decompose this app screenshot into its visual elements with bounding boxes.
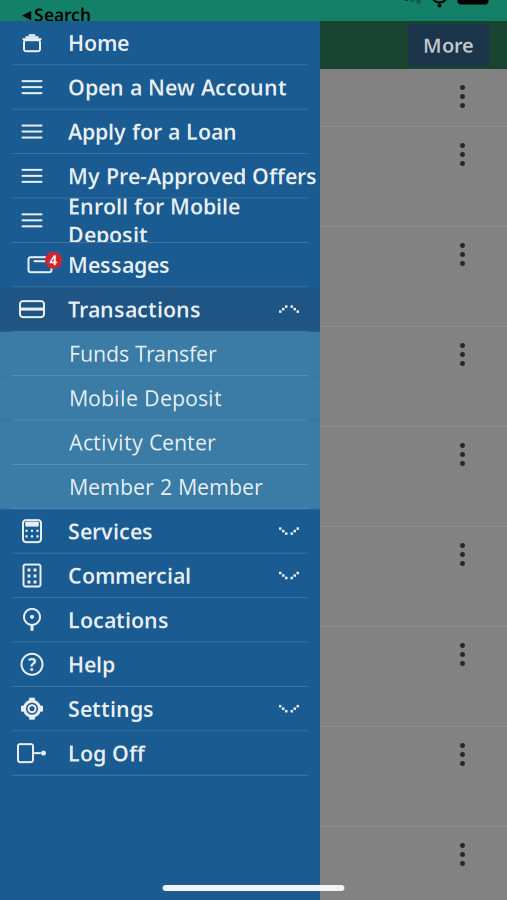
- staticText: Member 2 Member: [69, 472, 263, 501]
- staticText: Apply for a Loan: [68, 117, 237, 146]
- staticText: ◀: [22, 8, 31, 21]
- staticText: ?: [28, 653, 36, 676]
- staticText: My Pre-Approved Offers: [68, 162, 317, 190]
- staticText: More: [423, 32, 474, 58]
- button[interactable]: Transactions: [0, 287, 320, 332]
- button[interactable]: Services: [0, 509, 320, 554]
- button[interactable]: Funds Transfer: [0, 332, 320, 376]
- staticText: Commercial: [68, 561, 191, 590]
- button[interactable]: Mobile Deposit: [0, 376, 320, 421]
- button[interactable]: 4: [0, 243, 320, 287]
- staticText: Services: [68, 517, 153, 545]
- staticText: Funds Transfer: [69, 339, 217, 368]
- button[interactable]: ?: [0, 643, 320, 687]
- staticText: Home: [68, 28, 129, 57]
- button[interactable]: Open a New Account: [0, 65, 320, 110]
- staticText: Open a New Account: [68, 73, 287, 101]
- staticText: Enroll for Mobile Deposit: [68, 192, 240, 249]
- button[interactable]: Home: [0, 21, 320, 65]
- staticText: Settings: [68, 694, 154, 723]
- button[interactable]: Settings: [0, 687, 320, 731]
- staticText: Log Off: [68, 739, 145, 767]
- staticText: Mobile Deposit: [69, 384, 222, 412]
- button[interactable]: My Pre-Approved Offers: [0, 154, 320, 199]
- button[interactable]: Apply for a Loan: [0, 110, 320, 154]
- staticText: Locations: [68, 606, 169, 634]
- button[interactable]: Enroll for Mobile Deposit: [0, 199, 320, 243]
- button[interactable]: Locations: [0, 598, 320, 643]
- staticText: Search: [34, 3, 91, 26]
- staticText: Messages: [68, 250, 170, 279]
- button[interactable]: Log Off: [0, 731, 320, 776]
- staticText: 4: [49, 251, 57, 269]
- button[interactable]: Activity Center: [0, 421, 320, 465]
- staticText: Transactions: [68, 295, 201, 323]
- button[interactable]: Commercial: [0, 554, 320, 598]
- button[interactable]: Member 2 Member: [0, 465, 320, 509]
- staticText: Help: [68, 650, 115, 678]
- staticText: Activity Center: [69, 428, 216, 456]
- button[interactable]: More: [408, 24, 489, 66]
